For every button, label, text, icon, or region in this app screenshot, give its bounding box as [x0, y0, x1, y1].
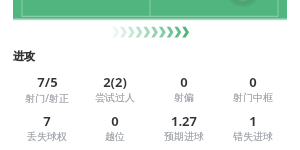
button[interactable]: 7/5: [13, 73, 81, 105]
staticText: 射偏: [174, 91, 194, 104]
staticText: 7/5: [37, 73, 58, 91]
staticText: 7: [43, 112, 51, 130]
staticText: 错失进球: [233, 130, 273, 143]
staticText: 射门/射正: [25, 91, 69, 105]
button[interactable]: 1: [218, 112, 287, 143]
button[interactable]: 进攻: [13, 49, 35, 63]
staticText: 0: [180, 73, 188, 91]
staticText: 尝试过人: [95, 91, 135, 104]
staticText: 2(2): [103, 73, 127, 91]
button[interactable]: 2(2): [81, 73, 149, 104]
staticText: 进攻: [13, 49, 35, 63]
staticText: 1.27: [171, 112, 197, 130]
staticText: 0: [249, 73, 257, 91]
staticText: 射门中框: [233, 91, 273, 104]
button[interactable]: 7: [13, 112, 81, 143]
button[interactable]: 0: [218, 73, 287, 104]
staticText: 0: [111, 112, 119, 130]
button[interactable]: Match momentum: [0, 0, 300, 40]
button[interactable]: 1.27: [149, 112, 218, 143]
button[interactable]: 0: [149, 73, 218, 104]
button[interactable]: 0: [81, 112, 149, 143]
staticText: 1: [249, 112, 257, 130]
staticText: 预期进球: [164, 130, 204, 143]
staticText: 越位: [105, 130, 125, 143]
staticText: 丢失球权: [27, 130, 67, 143]
